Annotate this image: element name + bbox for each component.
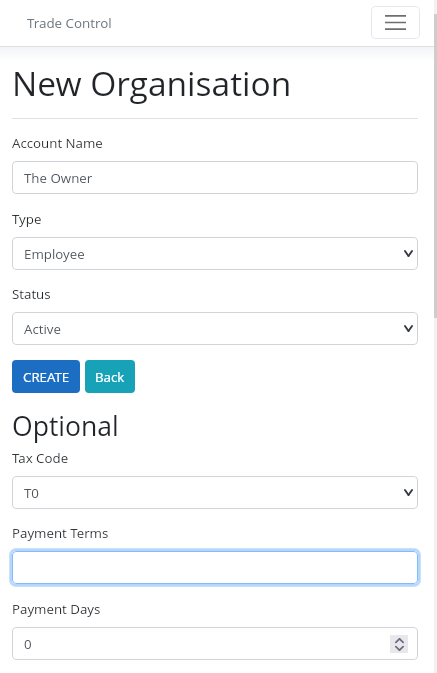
staticText: Type: [12, 210, 42, 228]
button[interactable]: Menu: [371, 6, 420, 39]
staticText: Payment Terms: [12, 524, 109, 542]
button[interactable]: Increment value: [390, 635, 408, 653]
button[interactable]: Back: [85, 360, 135, 393]
button[interactable]: 0: [12, 627, 418, 660]
staticText: 0: [24, 635, 32, 653]
staticText: Payment Days: [12, 600, 101, 618]
staticText: The Owner: [24, 169, 93, 187]
button[interactable]: The Owner: [12, 161, 418, 194]
button[interactable]: CREATE: [12, 360, 80, 393]
button[interactable]: Trade Control: [16, 8, 123, 38]
staticText: Account Name: [12, 134, 103, 152]
staticText: Active: [24, 320, 61, 338]
button[interactable]: [12, 551, 418, 584]
staticText: Tax Code: [12, 449, 69, 467]
staticText: Back: [95, 368, 125, 386]
staticText: Status: [12, 285, 51, 303]
staticText: Optional: [12, 408, 119, 444]
staticText: CREATE: [23, 368, 70, 386]
staticText: T0: [24, 484, 39, 502]
staticText: Employee: [24, 245, 85, 263]
button[interactable]: Employee: [12, 237, 418, 270]
button[interactable]: Active: [12, 312, 418, 345]
staticText: Trade Control: [27, 14, 112, 32]
button[interactable]: T0: [12, 476, 418, 509]
staticText: New Organisation: [12, 60, 292, 106]
